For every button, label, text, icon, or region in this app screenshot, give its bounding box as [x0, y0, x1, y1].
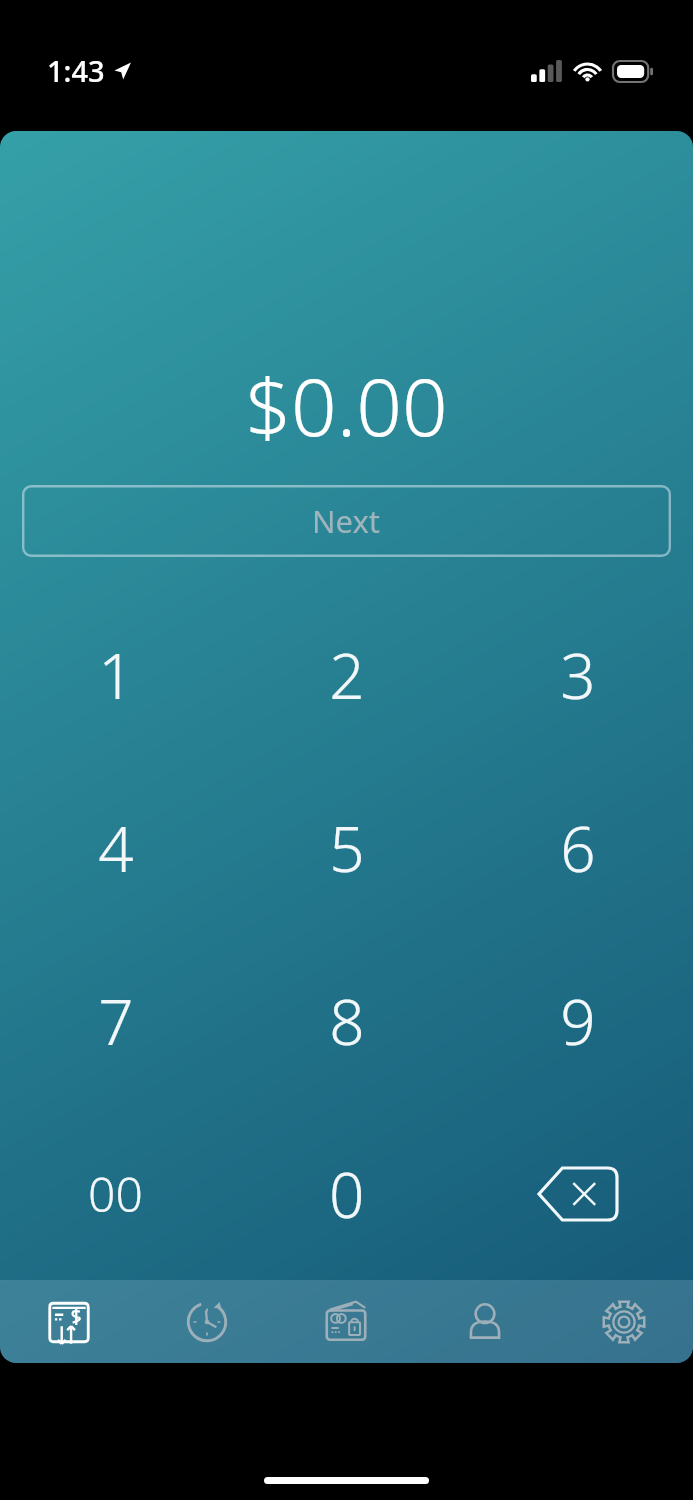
- staticText: 1:43: [47, 51, 105, 90]
- staticText: 5: [329, 806, 365, 890]
- button[interactable]: 9: [462, 934, 693, 1107]
- button[interactable]: Transactions: [0, 1280, 138, 1363]
- button[interactable]: 1: [0, 588, 231, 761]
- staticText: 8: [329, 979, 365, 1063]
- button[interactable]: 5: [231, 761, 462, 934]
- staticText: 1: [98, 633, 134, 717]
- button[interactable]: 6: [462, 761, 693, 934]
- staticText: 9: [560, 979, 596, 1063]
- button[interactable]: 2: [231, 588, 462, 761]
- button[interactable]: 8: [231, 934, 462, 1107]
- button[interactable]: History: [138, 1280, 276, 1363]
- button[interactable]: 00: [0, 1107, 231, 1280]
- staticText: 00: [88, 1161, 143, 1226]
- staticText: 7: [98, 979, 134, 1063]
- staticText: 0: [329, 1152, 365, 1236]
- button[interactable]: Cards: [276, 1280, 415, 1363]
- button[interactable]: Settings: [554, 1280, 693, 1363]
- button[interactable]: Profile: [415, 1280, 554, 1363]
- button[interactable]: 4: [0, 761, 231, 934]
- button[interactable]: Backspace: [462, 1107, 693, 1280]
- staticText: 4: [98, 806, 134, 890]
- button[interactable]: 3: [462, 588, 693, 761]
- staticText: $0.00: [245, 350, 448, 459]
- button[interactable]: 0: [231, 1107, 462, 1280]
- button[interactable]: Next: [22, 485, 671, 557]
- staticText: Next: [312, 500, 381, 542]
- staticText: 3: [560, 633, 596, 717]
- staticText: 2: [329, 633, 365, 717]
- staticText: 6: [560, 806, 596, 890]
- button[interactable]: 7: [0, 934, 231, 1107]
